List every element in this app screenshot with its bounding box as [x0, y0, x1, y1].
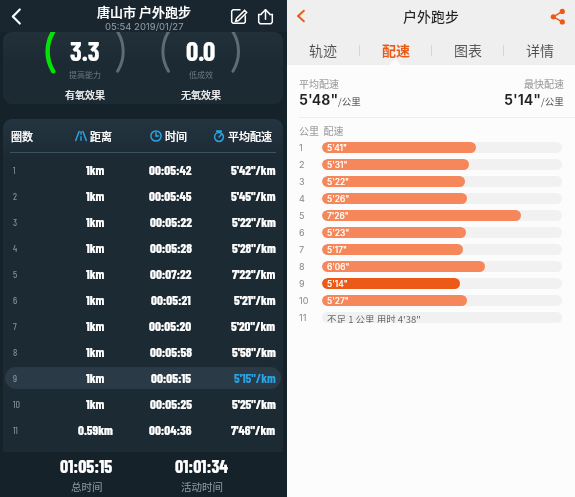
- staticText: 6'06": [327, 262, 350, 272]
- staticText: 7'26": [327, 211, 349, 221]
- staticText: 5'41": [327, 143, 347, 153]
- button[interactable]: 4: [5, 237, 281, 259]
- button[interactable]: 5: [287, 207, 575, 224]
- staticText: 1km: [86, 162, 105, 178]
- staticText: 1km: [86, 370, 105, 386]
- staticText: 有氧效果: [65, 87, 105, 101]
- button[interactable]: 4: [287, 190, 575, 207]
- staticText: 最快配速: [524, 76, 564, 90]
- button[interactable]: Back: [288, 3, 314, 29]
- button[interactable]: 2: [5, 185, 281, 207]
- button[interactable]: 8: [287, 258, 575, 275]
- staticText: 5'17": [327, 245, 347, 255]
- staticText: 00:05:20: [149, 318, 192, 334]
- staticText: 唐山市 户外跑步: [97, 2, 191, 21]
- staticText: 5'48"/公里: [299, 91, 361, 108]
- button[interactable]: 5: [5, 263, 281, 285]
- staticText: 1km: [86, 396, 105, 412]
- button[interactable]: Back: [2, 2, 30, 30]
- staticText: 11: [299, 312, 307, 323]
- staticText: 轨迹: [309, 40, 337, 60]
- button[interactable]: 11: [287, 309, 575, 326]
- button[interactable]: 配速: [360, 35, 431, 65]
- button[interactable]: 8: [5, 341, 281, 363]
- button[interactable]: Edit: [228, 6, 249, 27]
- staticText: 5'22"/km: [232, 214, 276, 230]
- button[interactable]: 图表: [432, 35, 503, 65]
- button[interactable]: 2: [287, 156, 575, 173]
- staticText: 1km: [86, 318, 105, 334]
- button[interactable]: 11: [5, 419, 281, 441]
- staticText: 5'26": [327, 194, 350, 204]
- staticText: 总时间: [71, 479, 103, 494]
- staticText: 5'14"/公里: [504, 91, 564, 108]
- staticText: 圈数: [11, 128, 33, 144]
- staticText: 9: [299, 278, 305, 289]
- button[interactable]: Share: [544, 3, 570, 29]
- staticText: 10: [299, 295, 309, 306]
- staticText: 5'15"/km: [234, 370, 276, 386]
- staticText: 5'22": [327, 177, 350, 187]
- staticText: 00:05:58: [150, 344, 192, 360]
- staticText: 3: [13, 216, 18, 228]
- staticText: 不足 1 公里 用时 4'38": [327, 312, 421, 323]
- staticText: 5'14": [327, 279, 348, 289]
- staticText: 7'22"/km: [232, 266, 276, 282]
- button[interactable]: 9: [287, 275, 575, 292]
- staticText: 0.0: [186, 34, 216, 66]
- button[interactable]: 7: [5, 315, 281, 337]
- button[interactable]: 10: [5, 393, 281, 415]
- button[interactable]: 3: [5, 211, 281, 233]
- button[interactable]: 详情: [504, 35, 575, 65]
- staticText: 配速: [382, 40, 410, 60]
- button[interactable]: 6: [287, 224, 575, 241]
- staticText: 5: [13, 268, 18, 280]
- staticText: 5'25"/km: [232, 396, 276, 412]
- staticText: 00:05:28: [150, 240, 192, 256]
- staticText: 距离: [90, 128, 112, 144]
- staticText: 8: [13, 346, 18, 358]
- staticText: 5'45"/km: [231, 188, 276, 204]
- staticText: 00:05:21: [151, 292, 191, 308]
- staticText: 5'31": [327, 160, 348, 170]
- staticText: 00:07:22: [150, 266, 192, 282]
- staticText: 4: [299, 193, 305, 204]
- button[interactable]: Share: [255, 6, 276, 27]
- staticText: 时间: [165, 128, 187, 144]
- staticText: 01:05:15: [60, 455, 113, 477]
- staticText: 2: [13, 190, 18, 202]
- staticText: 5'27": [327, 296, 349, 306]
- button[interactable]: 6: [5, 289, 281, 311]
- staticText: 01:01:34: [175, 455, 228, 477]
- staticText: 6: [13, 294, 18, 306]
- staticText: 00:05:25: [150, 396, 192, 412]
- staticText: 图表: [454, 40, 482, 60]
- button[interactable]: 轨迹: [287, 35, 359, 65]
- staticText: 1km: [86, 292, 105, 308]
- staticText: 2: [299, 159, 305, 170]
- staticText: 提高能力: [69, 69, 101, 81]
- staticText: 1km: [86, 188, 105, 204]
- staticText: 3: [299, 176, 305, 187]
- staticText: 户外跑步: [403, 6, 459, 26]
- staticText: 5'23": [327, 228, 350, 238]
- button[interactable]: 01:05:15: [36, 452, 136, 497]
- staticText: 平均配速: [299, 76, 339, 90]
- button[interactable]: 1: [5, 159, 281, 181]
- button[interactable]: 9: [5, 367, 281, 389]
- staticText: 1km: [86, 266, 105, 282]
- button[interactable]: 1: [287, 139, 575, 156]
- staticText: 00:04:36: [149, 422, 192, 438]
- staticText: 5'42"/km: [231, 162, 276, 178]
- staticText: 5: [299, 210, 305, 221]
- button[interactable]: 01:01:34: [151, 452, 251, 497]
- staticText: 1: [13, 164, 16, 176]
- button[interactable]: 10: [287, 292, 575, 309]
- button[interactable]: 7: [287, 241, 575, 258]
- staticText: 公里 配速: [299, 123, 344, 137]
- staticText: 5'28"/km: [232, 240, 276, 256]
- staticText: 1: [299, 142, 303, 153]
- staticText: 10: [13, 398, 20, 410]
- button[interactable]: 3: [287, 173, 575, 190]
- staticText: 详情: [526, 40, 554, 60]
